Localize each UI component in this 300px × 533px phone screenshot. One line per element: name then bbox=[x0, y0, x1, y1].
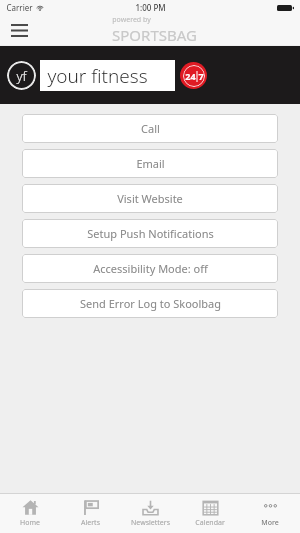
staticText: Send Error Log to Skoolbag bbox=[80, 296, 221, 311]
staticText: powered by bbox=[112, 15, 151, 25]
staticText: Call bbox=[141, 121, 160, 136]
staticText: Visit Website bbox=[117, 191, 183, 206]
button[interactable]: Calendar bbox=[180, 494, 240, 533]
button[interactable]: Alerts bbox=[60, 494, 120, 533]
button[interactable]: More bbox=[240, 494, 300, 533]
button[interactable]: Email bbox=[22, 149, 278, 178]
button[interactable]: Setup Push Notifications bbox=[22, 219, 278, 248]
staticText: Calendar bbox=[195, 518, 225, 528]
button[interactable]: Send Error Log to Skoolbag bbox=[22, 289, 278, 318]
button[interactable]: Home bbox=[0, 494, 60, 533]
staticText: Newsletters bbox=[131, 518, 170, 528]
staticText: your fitness bbox=[47, 63, 148, 89]
staticText: Carrier bbox=[6, 2, 33, 13]
staticText: 24 bbox=[185, 70, 196, 82]
button[interactable]: Accessibility Mode: off bbox=[22, 254, 278, 283]
staticText: 7 bbox=[198, 70, 204, 82]
staticText: yf bbox=[16, 67, 27, 85]
staticText: Home bbox=[20, 518, 40, 528]
staticText: Accessibility Mode: off bbox=[93, 261, 208, 276]
button[interactable]: Menu bbox=[4, 15, 34, 45]
button[interactable]: Newsletters bbox=[120, 494, 180, 533]
staticText: Alerts bbox=[81, 518, 100, 528]
staticText: More bbox=[261, 518, 279, 528]
button[interactable]: Visit Website bbox=[22, 184, 278, 213]
staticText: Email bbox=[136, 156, 165, 171]
staticText: SPORTSBAG bbox=[112, 25, 197, 45]
staticText: 1:00 PM bbox=[135, 2, 166, 13]
staticText: Setup Push Notifications bbox=[87, 226, 214, 241]
button[interactable]: Call bbox=[22, 114, 278, 143]
